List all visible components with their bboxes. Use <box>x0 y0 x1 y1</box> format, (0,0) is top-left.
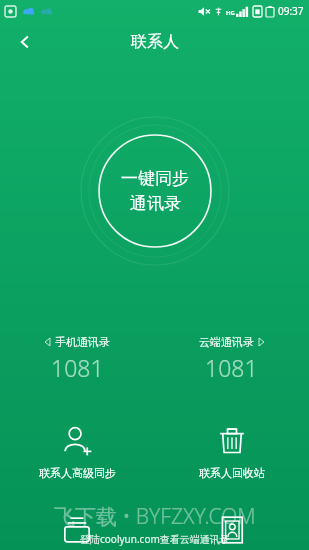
button[interactable]: Back <box>8 25 42 59</box>
staticText: 联系人高级同步 <box>39 466 116 480</box>
button[interactable]: 联系人回收站 <box>154 421 309 484</box>
staticText: 联系人回收站 <box>199 466 265 480</box>
button[interactable]: 卡联系人 <box>154 510 309 550</box>
staticText: 云端通讯录 <box>199 335 254 349</box>
staticText: 一键同步 <box>121 168 189 189</box>
staticText: 手机通讯录 <box>55 335 110 349</box>
button[interactable]: 联系人高级同步 <box>0 421 154 484</box>
button[interactable]: 云端通讯录 <box>154 333 309 385</box>
staticText: 飞下载 • BYFZXY.COM <box>54 502 256 531</box>
staticText: 1081 <box>205 352 258 383</box>
button[interactable]: 手机通讯录 <box>0 333 154 385</box>
staticText: 通讯录 <box>130 193 181 214</box>
staticText: 09:37 <box>278 4 304 18</box>
staticText: HG <box>226 9 235 17</box>
staticText: 登陆coolyun.com查看云端通讯录 <box>80 532 230 546</box>
button[interactable]: 合并重复联系人 <box>0 510 154 550</box>
staticText: 1081 <box>51 352 104 383</box>
button[interactable]: 一键同步 <box>80 116 230 266</box>
staticText: 联系人 <box>131 32 179 52</box>
